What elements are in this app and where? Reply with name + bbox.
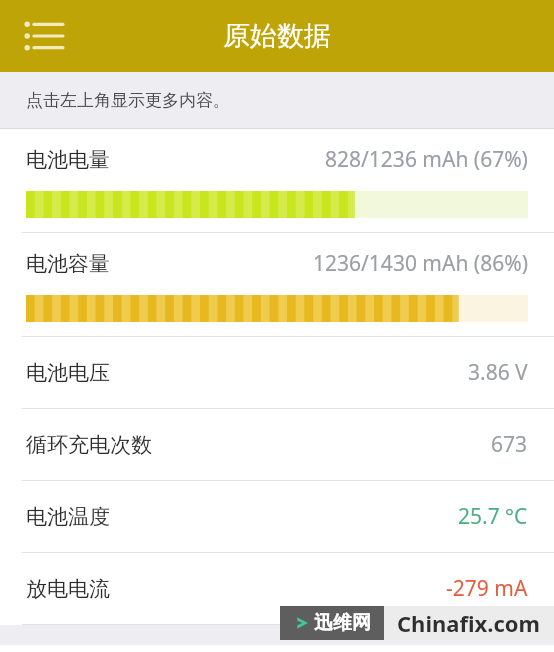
button[interactable]: 放电电流: [0, 553, 554, 624]
staticText: 循环充电次数: [26, 432, 152, 458]
staticText: 电池容量: [26, 251, 110, 277]
staticText: 点击左上角显示更多内容。: [26, 90, 230, 111]
button[interactable]: 电池电压: [0, 337, 554, 408]
button[interactable]: 电池温度: [0, 481, 554, 552]
staticText: 电池温度: [26, 504, 110, 530]
staticText: 1236/1430 mAh (86%): [313, 249, 528, 278]
staticText: 3.86 V: [468, 358, 528, 387]
button[interactable]: 电池容量: [0, 233, 554, 336]
staticText: 迅维网: [314, 611, 371, 635]
button[interactable]: 电池电量: [0, 129, 554, 232]
staticText: 828/1236 mAh (67%): [325, 145, 528, 174]
staticText: 放电电流: [26, 576, 110, 602]
button[interactable]: 循环充电次数: [0, 409, 554, 480]
button[interactable]: Menu: [16, 8, 72, 64]
staticText: 原始数据: [223, 19, 331, 53]
staticText: -279 mA: [446, 574, 528, 603]
staticText: 电池电压: [26, 360, 110, 386]
staticText: 25.7 °C: [458, 502, 528, 531]
staticText: 673: [491, 430, 528, 459]
staticText: Chinafix.com: [397, 608, 541, 638]
staticText: 电池电量: [26, 147, 110, 173]
